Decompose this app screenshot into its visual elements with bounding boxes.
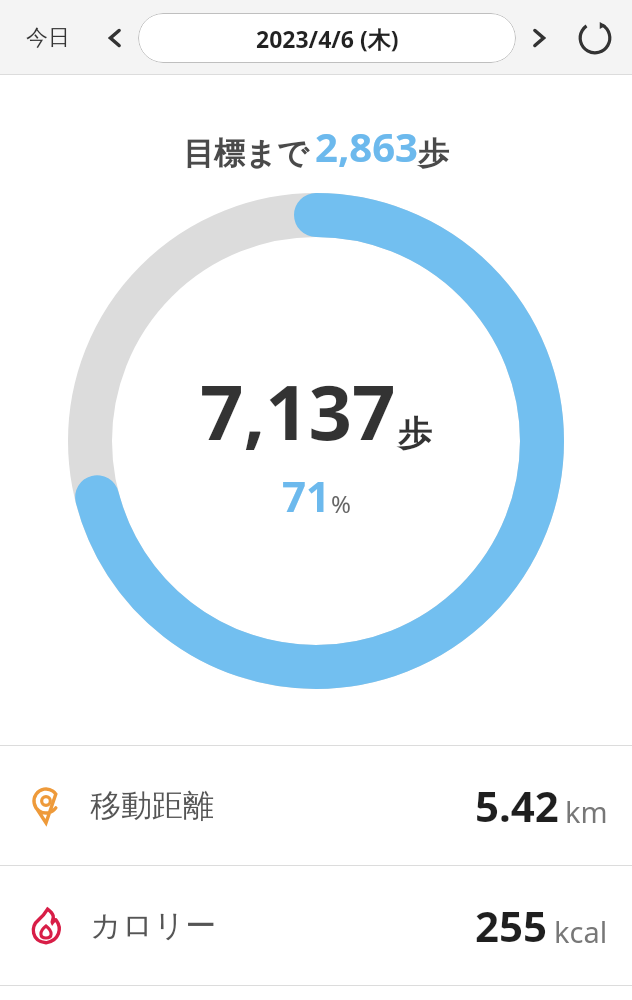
staticText: 今日 bbox=[26, 24, 70, 52]
button[interactable]: Next day bbox=[520, 18, 560, 58]
button[interactable]: Distance bbox=[0, 746, 632, 865]
staticText: カロリー bbox=[90, 906, 217, 945]
staticText: 歩 bbox=[398, 412, 432, 455]
staticText: 2023/4/6 (木) bbox=[256, 23, 399, 54]
other: Calories bbox=[24, 904, 68, 948]
staticText: 歩 bbox=[418, 134, 449, 173]
button[interactable]: Calories bbox=[0, 866, 632, 985]
other: Distance bbox=[24, 784, 68, 828]
staticText: 7,137 bbox=[200, 359, 396, 463]
staticText: 71 bbox=[282, 467, 331, 524]
staticText: 2,863 bbox=[315, 119, 418, 173]
staticText: 5.42 bbox=[475, 777, 559, 834]
staticText: 目標まで bbox=[183, 134, 309, 173]
staticText: % bbox=[331, 487, 351, 520]
staticText: km bbox=[565, 792, 608, 831]
button[interactable]: Previous day bbox=[94, 18, 134, 58]
button[interactable]: 2023/4/6 (木) bbox=[138, 13, 516, 63]
button[interactable]: Refresh bbox=[572, 15, 618, 61]
staticText: 移動距離 bbox=[90, 786, 214, 825]
button[interactable]: 今日 bbox=[14, 18, 82, 58]
staticText: kcal bbox=[554, 912, 608, 951]
staticText: 255 bbox=[475, 897, 548, 954]
